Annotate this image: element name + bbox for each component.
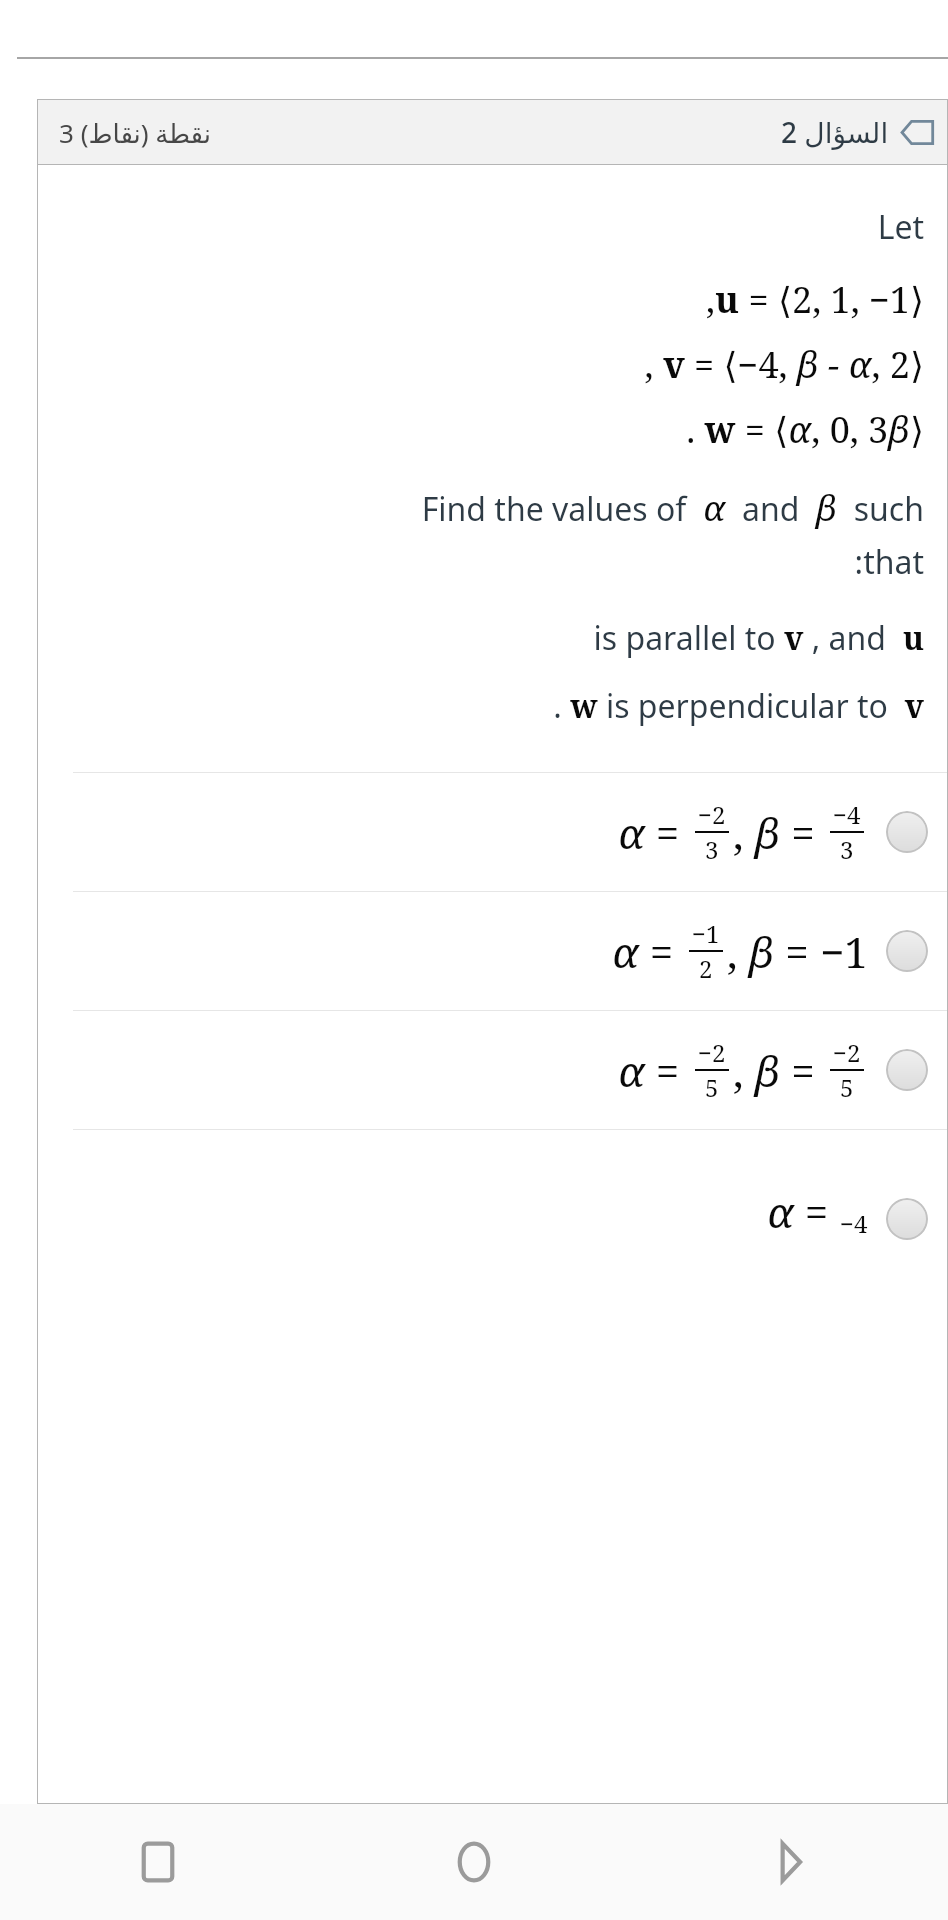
button[interactable]: Home [316,1804,632,1920]
staticText: , [727,923,749,980]
staticText: السؤال 2 [781,113,889,151]
button[interactable]: Select answer [886,930,928,972]
staticText: −2 [698,798,726,831]
staticText: −4 [833,798,861,831]
button[interactable]: Select answer [886,1049,928,1091]
staticText: 3 [705,833,719,866]
staticText: , [733,1042,755,1099]
staticText: −1 [692,917,720,950]
staticText: is parallel to v , and u [61,616,924,660]
staticText: α = [612,923,685,980]
staticText: β = [755,804,826,861]
button[interactable]: Recent apps [0,1804,316,1920]
staticText: 2 [699,952,713,985]
staticText: α = [767,1183,840,1240]
staticText: −2 [833,1036,861,1069]
staticText: . w is perpendicular to v [61,684,924,728]
staticText: . w = ⟨α, 0, 3β⟩ [61,405,924,454]
staticText: 5 [705,1071,719,1104]
staticText: α = [618,804,691,861]
staticText: ,u = ⟨2, 1, −1⟩ [61,275,924,324]
staticText: −2 [698,1036,726,1069]
button[interactable]: Select answer [886,811,928,853]
button[interactable]: α = [37,773,948,891]
staticText: α = [618,1042,691,1099]
staticText: 5 [840,1071,854,1104]
button[interactable]: Back [632,1804,948,1920]
button[interactable]: α = [37,1130,948,1240]
staticText: −4 [840,1207,868,1240]
staticText: Let [61,205,924,249]
staticText: Find the values of α and β such [61,484,924,532]
staticText: −1 [820,923,868,980]
staticText: , [733,804,755,861]
staticText: :that [61,540,924,584]
staticText: 3 [840,833,854,866]
staticText: , v = ⟨−4, β − α, 2⟩ [61,340,924,389]
button[interactable]: Question marker [901,120,934,145]
staticText: β = [749,923,820,980]
button[interactable]: α = [37,1011,948,1129]
button[interactable]: α = [37,892,948,1010]
staticText: 3 نقطة (نقاط) [59,115,212,150]
staticText: β = [755,1042,826,1099]
